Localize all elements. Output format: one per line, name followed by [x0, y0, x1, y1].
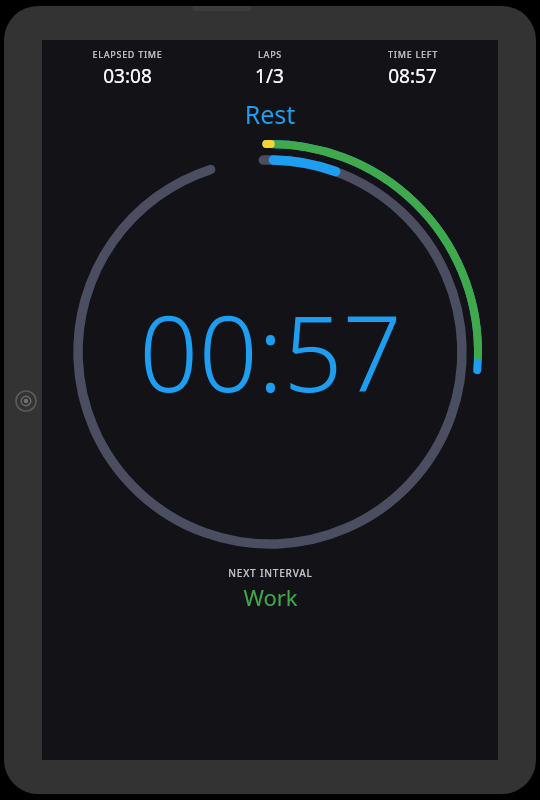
staticText: Work: [243, 582, 298, 612]
staticText: 00:57: [139, 281, 402, 423]
staticText: LAPS: [258, 48, 282, 60]
staticText: 1/3: [255, 63, 284, 89]
staticText: TIME LEFT: [388, 48, 438, 60]
button[interactable]: ELAPSED TIME: [56, 48, 198, 89]
staticText: ELAPSED TIME: [92, 48, 163, 60]
staticText: 08:57: [388, 63, 437, 89]
button[interactable]: Side button: [16, 391, 36, 411]
button[interactable]: TIME LEFT: [341, 48, 484, 89]
button[interactable]: NEXT INTERVAL: [42, 566, 498, 612]
staticText: 03:08: [103, 63, 152, 89]
button[interactable]: LAPS: [198, 48, 341, 89]
staticText: Rest: [42, 97, 498, 131]
staticText: NEXT INTERVAL: [228, 566, 313, 580]
